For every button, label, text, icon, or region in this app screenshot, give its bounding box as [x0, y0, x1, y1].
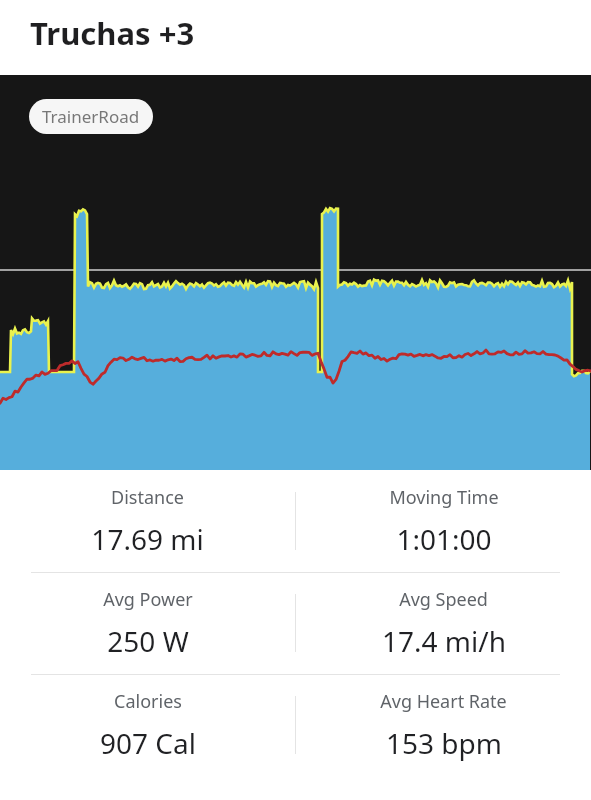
button[interactable]: Avg Heart Rate	[296, 674, 591, 776]
staticText: Calories	[114, 689, 182, 714]
button[interactable]: Avg Speed	[296, 572, 591, 674]
staticText: 250 W	[107, 622, 189, 660]
staticText: 17.69 mi	[91, 520, 204, 558]
button[interactable]: Distance	[0, 470, 295, 572]
staticText: 907 Cal	[100, 724, 196, 762]
staticText: Avg Speed	[399, 587, 488, 612]
button[interactable]: Calories	[0, 674, 295, 776]
staticText: Distance	[111, 485, 184, 510]
button[interactable]: Avg Power	[0, 572, 295, 674]
staticText: Avg Power	[103, 587, 193, 612]
staticText: Moving Time	[389, 485, 499, 510]
staticText: 153 bpm	[386, 724, 502, 762]
staticText: TrainerRoad	[42, 105, 140, 128]
button[interactable]: TrainerRoad source	[29, 99, 153, 134]
button[interactable]: Moving Time	[296, 470, 591, 572]
staticText: 1:01:00	[396, 520, 492, 558]
staticText: Truchas +3	[30, 12, 195, 54]
staticText: Avg Heart Rate	[380, 689, 507, 714]
staticText: 17.4 mi/h	[382, 622, 506, 660]
